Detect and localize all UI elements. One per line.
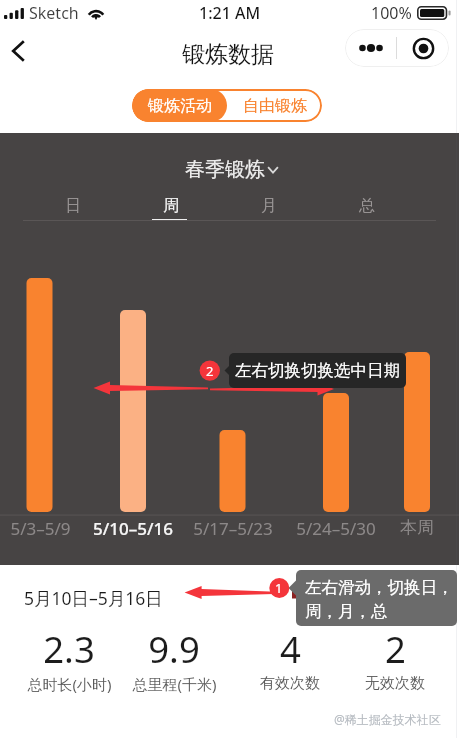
- button[interactable]: 日: [24, 196, 122, 224]
- staticText: 自由锻炼: [243, 96, 307, 116]
- staticText: 有效次数: [260, 674, 320, 693]
- staticText: 春季锻炼: [185, 157, 265, 182]
- staticText: 周: [163, 196, 179, 216]
- staticText: @稀土掘金技术社区: [334, 711, 441, 727]
- staticText: 5月10日–5月16日: [24, 586, 163, 610]
- staticText: 4: [280, 624, 301, 674]
- staticText: 锻炼活动: [148, 96, 212, 116]
- staticText: 无效次数: [365, 674, 425, 693]
- staticText: 月: [261, 196, 277, 216]
- staticText: 总时长(小时): [27, 674, 112, 694]
- staticText: 日: [65, 196, 81, 216]
- staticText: 锻炼数据: [182, 40, 274, 69]
- staticText: 5/24–5/30: [296, 517, 376, 540]
- staticText: 5/10–5/16: [93, 517, 173, 540]
- staticText: 2: [206, 362, 214, 380]
- staticText: 2.3: [43, 624, 95, 674]
- staticText: 左右切换切换选中日期: [235, 360, 400, 381]
- staticText: 5/3–5/9: [10, 517, 71, 540]
- staticText: 1:21 AM: [199, 2, 261, 24]
- staticText: 2: [385, 624, 406, 674]
- staticText: 总: [359, 196, 375, 216]
- staticText: 9.9: [148, 624, 200, 674]
- button[interactable]: 总: [318, 196, 416, 224]
- staticText: 100%: [371, 2, 412, 24]
- button[interactable]: 左右滑动，切换日，周，月，总: [296, 570, 457, 626]
- staticText: Sketch: [29, 2, 79, 24]
- button[interactable]: 2: [335, 624, 455, 693]
- staticText: 1: [275, 579, 283, 597]
- button[interactable]: 4: [230, 624, 350, 693]
- button[interactable]: More options: [345, 29, 396, 67]
- button[interactable]: Back: [0, 29, 40, 73]
- button[interactable]: 月: [220, 196, 318, 224]
- staticText: 5/17–5/23: [193, 517, 273, 540]
- staticText: 总里程(千米): [132, 674, 217, 694]
- staticText: 左右滑动，切换日，周，月，总: [305, 577, 457, 622]
- button[interactable]: 左右切换切换选中日期: [229, 353, 406, 388]
- button[interactable]: 周: [122, 196, 220, 224]
- button[interactable]: 9.9: [114, 624, 234, 694]
- button[interactable]: 春季锻炼: [185, 157, 279, 182]
- button[interactable]: 锻炼活动: [132, 89, 227, 122]
- button[interactable]: Record: [397, 29, 449, 67]
- button[interactable]: 2.3: [9, 624, 129, 694]
- staticText: 本周: [400, 517, 434, 538]
- button[interactable]: 自由锻炼: [227, 89, 322, 122]
